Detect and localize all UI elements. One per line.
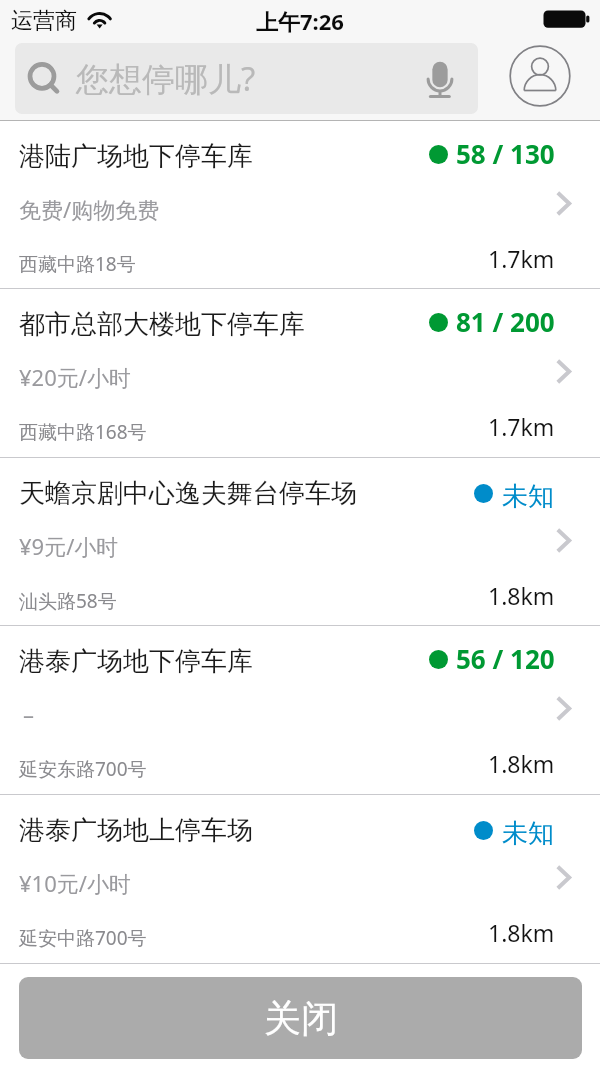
staticText: ¥10元/小时 <box>19 868 131 898</box>
button[interactable]: 天蟾京剧中心逸夫舞台停车场 <box>0 458 600 625</box>
staticText: 未知 <box>502 817 554 850</box>
button[interactable]: 港泰广场地下停车库 <box>0 626 600 793</box>
staticText: – <box>23 699 35 729</box>
staticText: 西藏中路18号 <box>19 251 136 277</box>
staticText: ¥20元/小时 <box>19 362 131 392</box>
staticText: 港泰广场地上停车场 <box>19 814 253 847</box>
staticText: 1.7km <box>488 243 555 274</box>
staticText: 58 / 130 <box>456 136 555 171</box>
staticText: 延安东路700号 <box>19 756 147 782</box>
staticText: 港陆广场地下停车库 <box>19 140 253 173</box>
staticText: 港泰广场地下停车库 <box>19 645 253 678</box>
button[interactable]: 您想停哪儿? <box>15 43 478 114</box>
staticText: 运营商 <box>11 7 77 35</box>
staticText: 1.8km <box>488 748 555 779</box>
staticText: 1.7km <box>488 411 555 442</box>
staticText: 上午7:26 <box>256 6 344 36</box>
staticText: 都市总部大楼地下停车库 <box>19 308 305 341</box>
staticText: 81 / 200 <box>456 304 555 339</box>
staticText: 免费/购物免费 <box>19 194 160 224</box>
button[interactable]: 都市总部大楼地下停车库 <box>0 289 600 456</box>
staticText: 您想停哪儿? <box>76 56 256 101</box>
button[interactable]: 关闭 <box>19 977 582 1059</box>
button[interactable]: Voice search <box>412 47 468 111</box>
staticText: 未知 <box>502 480 554 513</box>
staticText: 1.8km <box>488 580 555 611</box>
staticText: 1.8km <box>488 917 555 948</box>
button[interactable]: 港陆广场地下停车库 <box>0 121 600 288</box>
button[interactable]: Account <box>506 42 574 110</box>
staticText: 西藏中路168号 <box>19 419 147 445</box>
staticText: ¥9元/小时 <box>19 531 119 561</box>
staticText: 汕头路58号 <box>19 588 117 614</box>
button[interactable]: 港泰广场地上停车场 <box>0 795 600 962</box>
staticText: 关闭 <box>264 995 338 1042</box>
staticText: 延安中路700号 <box>19 925 147 951</box>
staticText: 天蟾京剧中心逸夫舞台停车场 <box>19 477 357 510</box>
staticText: 56 / 120 <box>456 641 555 676</box>
